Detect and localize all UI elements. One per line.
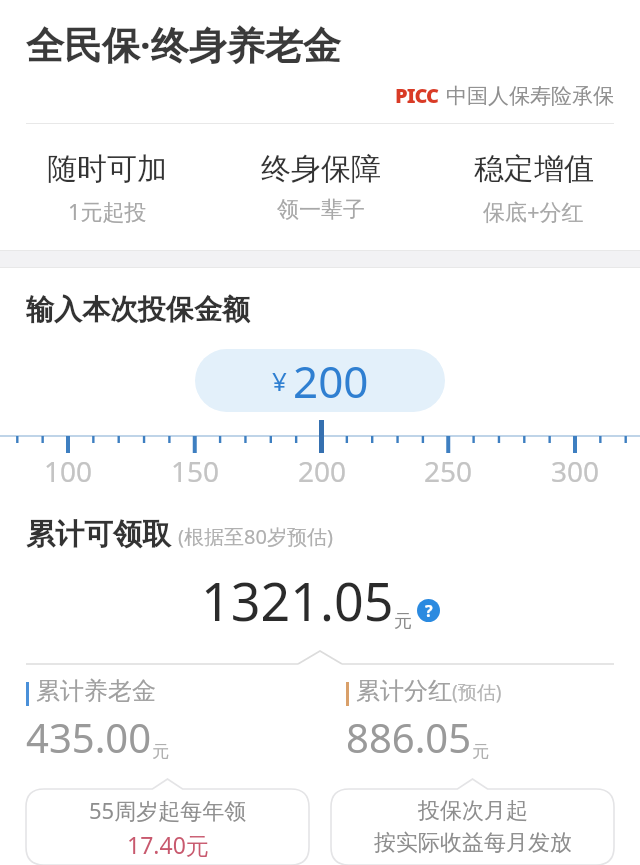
staticText: 150 [165, 452, 225, 490]
button[interactable]: 累计养老金 [26, 676, 320, 764]
button[interactable]: 说明 [417, 599, 440, 622]
staticText: 全民保·终身养老金 [26, 18, 341, 70]
staticText: 200 [292, 452, 352, 490]
staticText: 250 [418, 452, 478, 490]
button[interactable]: 随时可加 [0, 150, 214, 226]
button[interactable]: 累计分红 [346, 676, 640, 764]
staticText: 保底+分红 [483, 196, 584, 226]
staticText: 中国人保寿险承保 [446, 83, 614, 109]
button[interactable]: ¥ [195, 349, 445, 412]
staticText: (预估) [452, 679, 502, 705]
staticText: ¥ [272, 363, 287, 398]
staticText: 稳定增值 [474, 150, 594, 188]
button[interactable]: 终身保障 [214, 150, 427, 224]
staticText: 终身保障 [261, 150, 381, 188]
staticText: 按实际收益每月发放 [374, 829, 572, 857]
staticText: PICC [395, 82, 438, 109]
staticText: 1321.05 [201, 565, 394, 636]
staticText: 累计养老金 [36, 676, 156, 706]
staticText: 元 [152, 741, 169, 762]
staticText: (根据至80岁预估) [178, 523, 333, 550]
staticText: 1元起投 [68, 196, 147, 226]
staticText: 领一辈子 [277, 196, 365, 224]
button[interactable]: 稳定增值 [427, 150, 640, 226]
staticText: 200 [293, 351, 369, 411]
staticText: 元 [472, 741, 489, 762]
staticText: 随时可加 [47, 150, 167, 188]
staticText: 886.05 [346, 710, 472, 764]
staticText: 55周岁起每年领 [89, 795, 247, 825]
staticText: 300 [545, 452, 605, 490]
staticText: 输入本次投保金额 [26, 292, 250, 327]
staticText: 投保次月起 [418, 797, 528, 825]
staticText: 100 [38, 452, 98, 490]
staticText: ? [425, 600, 433, 622]
button[interactable]: 55周岁起每年领 [26, 789, 309, 865]
staticText: 元 [394, 610, 412, 633]
staticText: 17.40元 [127, 829, 209, 860]
staticText: 累计分红 [356, 676, 452, 706]
staticText: 435.00 [26, 710, 152, 764]
button[interactable]: 投保次月起 [331, 789, 614, 865]
staticText: 累计可领取 [26, 516, 171, 553]
